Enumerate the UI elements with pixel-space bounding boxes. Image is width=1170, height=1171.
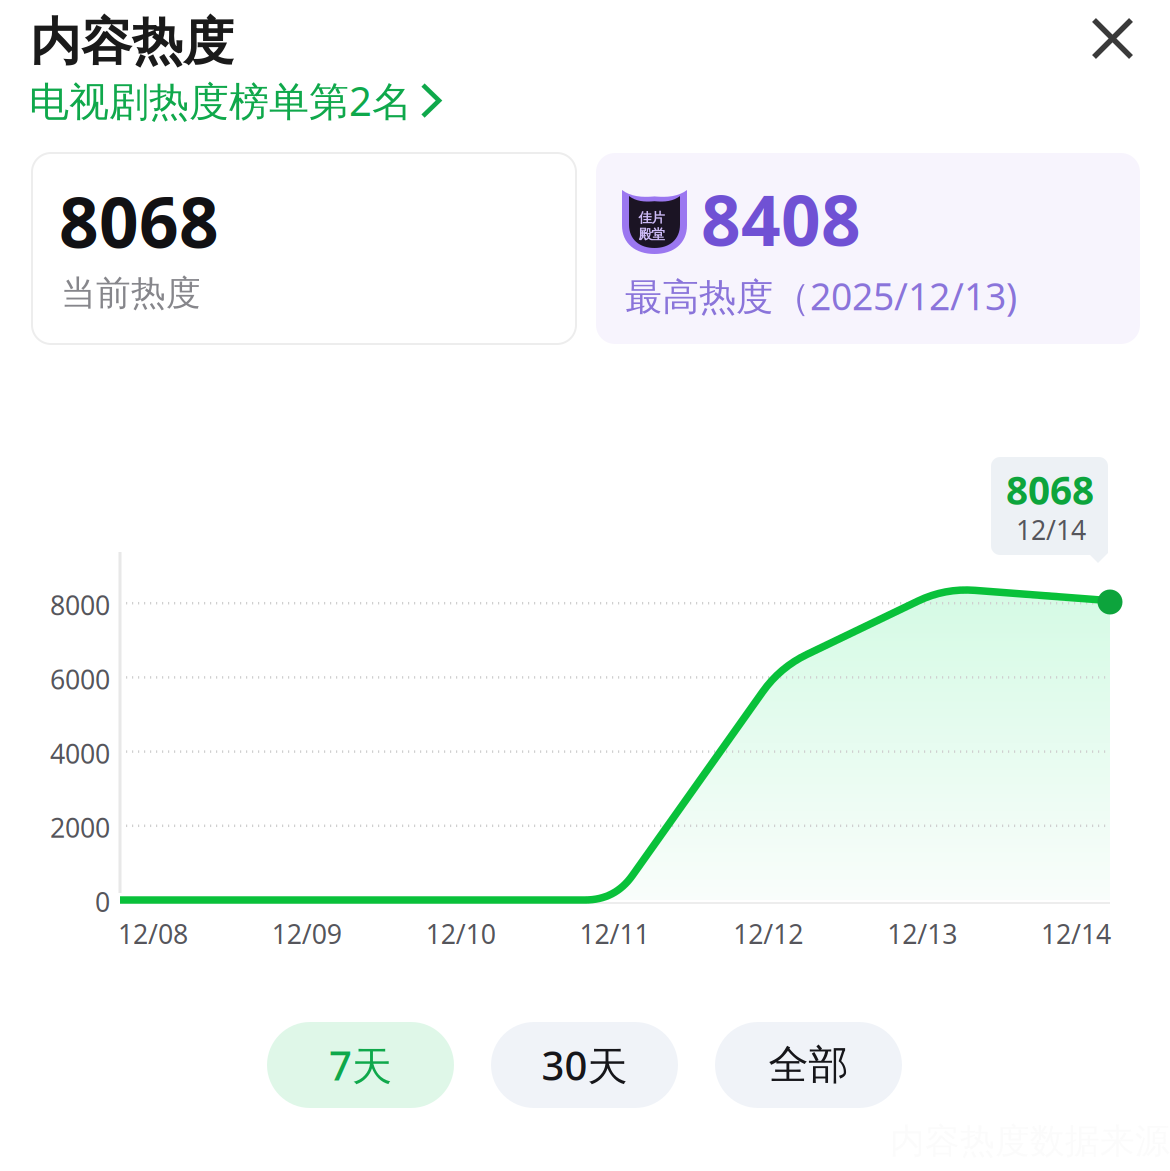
staticText: 6000 [50, 661, 110, 697]
staticText: 佳片 [638, 210, 664, 226]
staticText: 12/12 [733, 916, 803, 951]
staticText: 8068 [59, 175, 219, 267]
staticText: 12/08 [118, 916, 188, 951]
staticText: 30天 [541, 1038, 627, 1091]
staticText: 7天 [329, 1038, 392, 1091]
staticText: 8408 [701, 173, 861, 265]
staticText: 12/14 [1016, 512, 1086, 547]
staticText: 最高热度（2025/12/13) [625, 271, 1017, 321]
staticText: 12/13 [887, 916, 957, 951]
button[interactable]: 30天 [491, 1022, 678, 1108]
button[interactable]: 电视剧热度榜单第2名 [29, 74, 440, 127]
staticText: 内容热度 [30, 11, 234, 73]
button[interactable]: 7天 [267, 1022, 454, 1108]
button[interactable]: 全部 [715, 1022, 902, 1108]
staticText: 0 [95, 884, 110, 919]
staticText: 4000 [50, 736, 110, 771]
button[interactable]: 关闭 [1074, 0, 1151, 77]
staticText: 12/10 [426, 916, 496, 951]
staticText: 8000 [50, 587, 110, 623]
staticText: 殿堂 [638, 226, 664, 242]
staticText: 8068 [1006, 464, 1094, 515]
staticText: 电视剧热度榜单第2名 [29, 74, 412, 127]
staticText: 2000 [50, 810, 110, 845]
staticText: 12/09 [272, 916, 342, 951]
staticText: 12/11 [579, 916, 649, 951]
staticText: 当前热度 [61, 272, 201, 315]
staticText: 全部 [768, 1040, 848, 1089]
staticText: 12/14 [1041, 916, 1111, 951]
